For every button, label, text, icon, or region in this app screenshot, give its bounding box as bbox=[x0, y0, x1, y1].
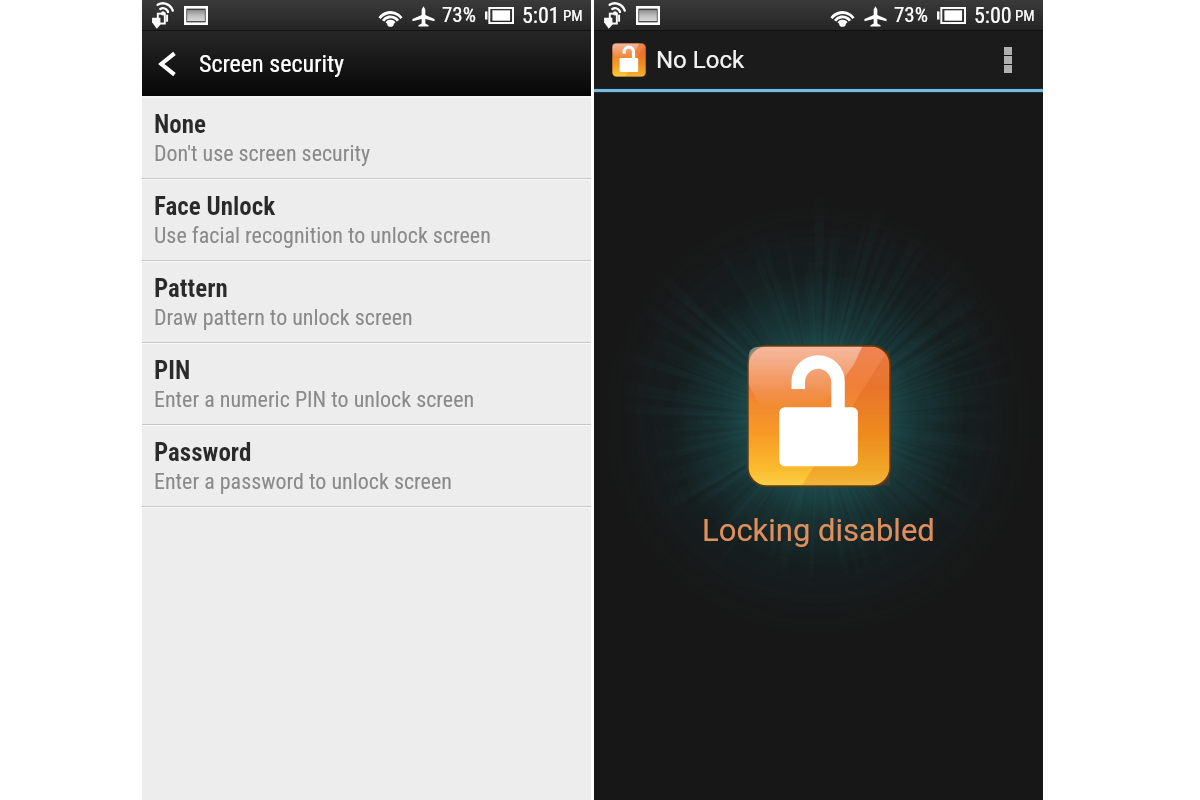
button[interactable]: PIN bbox=[142, 344, 591, 426]
staticText: 73% bbox=[442, 3, 477, 28]
staticText: Don't use screen security bbox=[154, 141, 371, 167]
staticText: Screen security bbox=[199, 50, 345, 78]
button[interactable]: More options bbox=[995, 38, 1021, 82]
other: Back bbox=[159, 51, 177, 77]
staticText: PIN bbox=[154, 356, 191, 385]
button[interactable]: None bbox=[142, 98, 591, 180]
staticText: PM bbox=[563, 7, 583, 25]
staticText: Use facial recognition to unlock screen bbox=[154, 223, 491, 249]
staticText: Draw pattern to unlock screen bbox=[154, 305, 413, 331]
staticText: Password bbox=[154, 438, 252, 467]
button[interactable]: Back bbox=[142, 31, 591, 96]
staticText: 73% bbox=[894, 3, 929, 28]
button[interactable]: Pattern bbox=[142, 262, 591, 344]
staticText: 5:01 bbox=[522, 3, 560, 29]
staticText: Face Unlock bbox=[154, 192, 276, 221]
staticText: Enter a numeric PIN to unlock screen bbox=[154, 387, 475, 413]
staticText: No Lock bbox=[656, 46, 745, 74]
button[interactable]: Face Unlock bbox=[142, 180, 591, 262]
button[interactable]: Password bbox=[142, 426, 591, 508]
staticText: PM bbox=[1015, 7, 1035, 25]
staticText: 5:00 bbox=[974, 3, 1012, 29]
button[interactable]: No Lock bbox=[594, 31, 1043, 88]
staticText: Pattern bbox=[154, 274, 228, 303]
staticText: Locking disabled bbox=[702, 512, 935, 548]
staticText: Enter a password to unlock screen bbox=[154, 469, 452, 495]
staticText: None bbox=[154, 110, 207, 139]
